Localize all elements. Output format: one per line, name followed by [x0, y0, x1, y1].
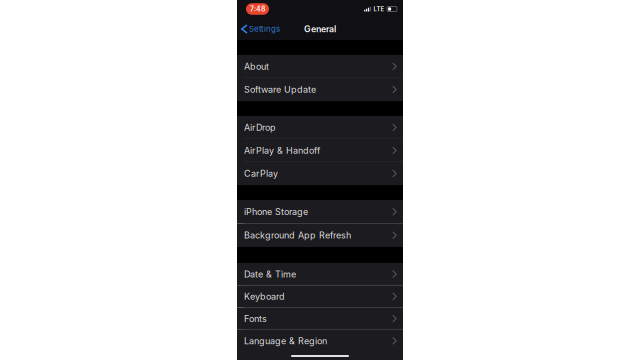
staticText: Language & Region [244, 335, 327, 346]
button[interactable]: Settings [237, 18, 283, 40]
button[interactable]: AirDrop [237, 116, 403, 139]
button[interactable]: Date & Time [237, 263, 403, 285]
staticText: Fonts [244, 313, 267, 324]
button[interactable]: Software Update [237, 78, 403, 101]
staticText: Settings [249, 24, 280, 34]
staticText: About [244, 61, 269, 72]
button[interactable]: Keyboard [237, 285, 403, 307]
staticText: Date & Time [244, 269, 296, 280]
button[interactable]: AirPlay & Handoff [237, 139, 403, 162]
staticText: Keyboard [244, 291, 285, 302]
staticText: iPhone Storage [244, 206, 308, 217]
staticText: 7:48 [250, 5, 265, 13]
button[interactable]: About [237, 55, 403, 78]
staticText: Background App Refresh [244, 230, 351, 241]
button[interactable]: Background App Refresh [237, 223, 403, 247]
button[interactable]: Fonts [237, 307, 403, 330]
staticText: AirPlay & Handoff [244, 145, 320, 156]
staticText: LTE [374, 5, 385, 13]
button[interactable]: Language & Region [237, 330, 403, 352]
staticText: General [304, 24, 336, 34]
staticText: CarPlay [244, 168, 278, 179]
staticText: Software Update [244, 84, 316, 95]
button[interactable]: iPhone Storage [237, 200, 403, 223]
button[interactable]: CarPlay [237, 162, 403, 185]
staticText: AirDrop [244, 122, 276, 133]
